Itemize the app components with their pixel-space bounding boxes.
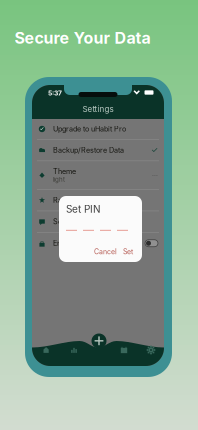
button[interactable]: Add bbox=[91, 333, 107, 349]
button[interactable]: Statistics bbox=[66, 343, 82, 357]
staticText: Theme bbox=[53, 167, 76, 176]
staticText: ··· bbox=[152, 171, 158, 179]
button[interactable]: Settings bbox=[143, 343, 159, 357]
staticText: Cancel bbox=[94, 248, 117, 256]
button[interactable]: Upgrade to uHabit Pro bbox=[32, 119, 164, 139]
button[interactable]: Cancel bbox=[91, 246, 120, 258]
staticText: ✓ bbox=[151, 145, 158, 155]
staticText: Settings bbox=[82, 104, 113, 114]
button[interactable]: Theme bbox=[32, 161, 164, 189]
staticText: Set PIN bbox=[66, 203, 101, 215]
staticText: Rate uHabit bbox=[53, 196, 91, 204]
button[interactable]: Home bbox=[38, 343, 54, 357]
button[interactable]: Rate uHabit bbox=[32, 190, 164, 211]
button[interactable]: Backup/Restore Data bbox=[32, 140, 164, 161]
button[interactable]: Set bbox=[120, 246, 136, 258]
staticText: Backup/Restore Data bbox=[53, 146, 124, 154]
staticText: Set bbox=[123, 248, 133, 256]
staticText: Send Feedback bbox=[53, 217, 104, 226]
button[interactable]: Calendar bbox=[116, 343, 132, 357]
staticText: 5:37 bbox=[48, 89, 62, 97]
button[interactable]: Enable PIN lock bbox=[32, 233, 164, 254]
staticText: Upgrade to uHabit Pro bbox=[53, 125, 126, 133]
button[interactable]: Send Feedback bbox=[32, 211, 164, 232]
staticText: Secure Your Data bbox=[14, 28, 150, 48]
staticText: Enable PIN lock bbox=[53, 239, 105, 248]
staticText: light bbox=[53, 176, 65, 183]
